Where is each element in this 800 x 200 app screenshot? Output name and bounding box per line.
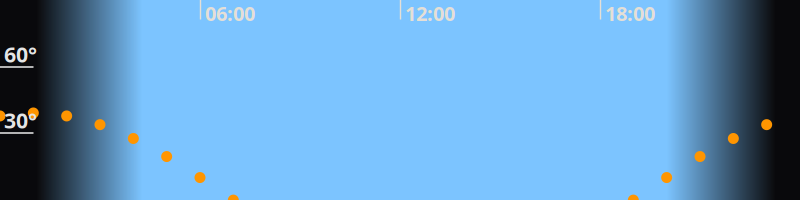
staticText: 06:00 <box>205 0 255 27</box>
staticText: 30° <box>4 106 37 134</box>
staticText: 12:00 <box>405 0 455 27</box>
staticText: 60° <box>4 40 37 68</box>
staticText: 18:00 <box>605 0 655 27</box>
